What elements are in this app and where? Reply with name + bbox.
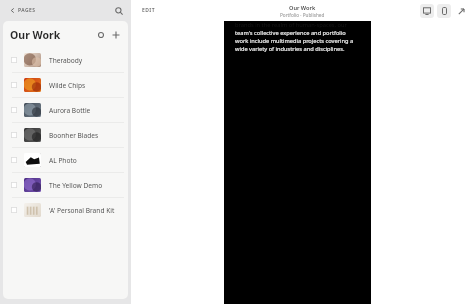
button[interactable]: Desktop preview [420, 4, 434, 18]
button[interactable]: Therabody [3, 48, 128, 72]
button[interactable]: AL Photo [3, 148, 128, 172]
button[interactable]: EDIT [139, 3, 158, 18]
staticText: brands in the realm of human-spaces, our [235, 21, 347, 29]
staticText: Aurora Bottle [49, 106, 91, 115]
staticText: work include multimedia projects coverin… [235, 37, 354, 45]
button[interactable]: 'A' Personal Brand Kit [3, 198, 128, 222]
button[interactable]: Add page [110, 29, 122, 41]
staticText: Portfolio · Published [280, 12, 325, 18]
button[interactable]: Mobile preview [437, 4, 451, 18]
staticText: EDIT [142, 7, 155, 14]
staticText: PAGES [18, 7, 36, 14]
button[interactable]: Open preview [455, 5, 468, 18]
button[interactable]: Search [111, 3, 126, 18]
staticText: Boonher Blades [49, 131, 99, 140]
staticText: Therabody [49, 56, 83, 65]
staticText: Our Work [289, 4, 316, 12]
staticText: wide variety of industries and disciplin… [235, 45, 345, 53]
button[interactable]: Aurora Bottle [3, 98, 128, 122]
staticText: Our Work [10, 28, 61, 42]
button[interactable]: PAGES [8, 3, 38, 18]
staticText: The Yellow Demo [49, 181, 103, 190]
button[interactable]: The Yellow Demo [3, 173, 128, 197]
staticText: AL Photo [49, 156, 77, 165]
button[interactable]: Wilde Chips [3, 73, 128, 97]
staticText: 'A' Personal Brand Kit [49, 206, 115, 215]
button[interactable]: Page settings [95, 29, 107, 41]
button[interactable]: Boonher Blades [3, 123, 128, 147]
staticText: team's collective experience and portfol… [235, 29, 346, 37]
staticText: Wilde Chips [49, 81, 86, 90]
